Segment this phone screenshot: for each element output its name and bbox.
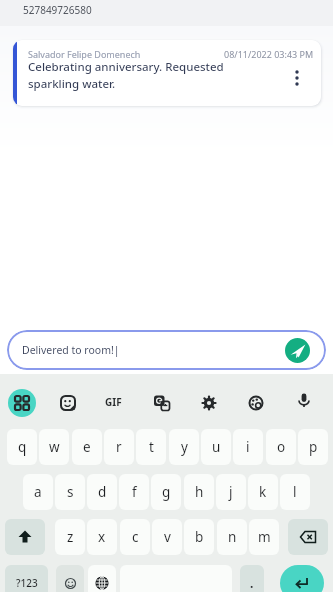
button[interactable]: y [169,429,199,465]
button[interactable]: e [72,429,102,465]
staticText: 08/11/2022 03:43 PM [224,48,314,60]
staticText: r [116,438,122,456]
button[interactable]: b [184,519,214,555]
staticText: . [250,575,254,591]
staticText: Delivered to room!| [22,343,120,357]
staticText: c [132,528,139,546]
staticText: 527849726580 [23,3,92,17]
button[interactable]: h [184,474,214,510]
button[interactable] [88,565,116,592]
button[interactable]: Salvador Felipe Domenech [13,40,321,106]
staticText: i [246,438,250,456]
staticText: u [212,438,221,456]
button[interactable]: c [120,519,150,555]
staticText: w [49,438,60,456]
button[interactable]: o [266,429,296,465]
staticText: x [98,528,106,546]
button[interactable]: j [216,474,246,510]
staticText: j [229,483,233,501]
button[interactable] [280,565,324,592]
button[interactable]: d [87,474,117,510]
staticText: l [293,483,297,501]
button[interactable]: GIF [105,395,122,409]
button[interactable]: . [240,565,264,592]
button[interactable]: t [136,429,166,465]
staticText: k [259,483,267,501]
button[interactable]: l [280,474,310,510]
staticText: s [67,483,74,501]
staticText: p [309,438,318,456]
button[interactable]: n [217,519,247,555]
button[interactable]: g [151,474,181,510]
button[interactable]: a [23,474,53,510]
staticText: m [258,528,271,546]
staticText: q [18,438,27,456]
button[interactable]: ?123 [5,565,48,592]
button[interactable]: r [104,429,134,465]
button[interactable]: s [55,474,85,510]
button[interactable] [289,70,305,86]
staticText: y [181,438,188,456]
button[interactable] [201,395,217,411]
staticText: Salvador Felipe Domenech [28,48,141,60]
button[interactable]: p [298,429,328,465]
button[interactable] [288,519,328,555]
staticText: d [98,483,107,501]
button[interactable] [248,395,264,411]
button[interactable]: Delivered to room!| [7,330,326,370]
button[interactable]: f [119,474,149,510]
button[interactable] [297,393,311,407]
button[interactable]: k [248,474,278,510]
button[interactable] [154,395,170,411]
button[interactable] [8,389,36,417]
staticText: g [162,483,171,501]
button[interactable]: i [233,429,263,465]
staticText: o [277,438,286,456]
button[interactable]: w [39,429,69,465]
staticText: ?123 [16,576,38,590]
staticText: a [34,483,42,501]
button[interactable]: z [55,519,85,555]
staticText: Celebrating anniversary. Requested spark… [28,59,224,91]
staticText: h [195,483,204,501]
button[interactable]: q [7,429,37,465]
staticText: v [164,528,171,546]
button[interactable]: m [249,519,279,555]
button[interactable] [56,565,84,592]
button[interactable]: x [87,519,117,555]
staticText: e [83,438,91,456]
staticText: f [132,483,137,501]
button[interactable] [60,395,76,411]
staticText: b [195,528,204,546]
button[interactable] [5,519,45,555]
button[interactable]: v [152,519,182,555]
button[interactable] [285,338,310,363]
staticText: t [149,438,154,456]
button[interactable]: u [201,429,231,465]
staticText: n [228,528,237,546]
staticText: z [67,528,74,546]
